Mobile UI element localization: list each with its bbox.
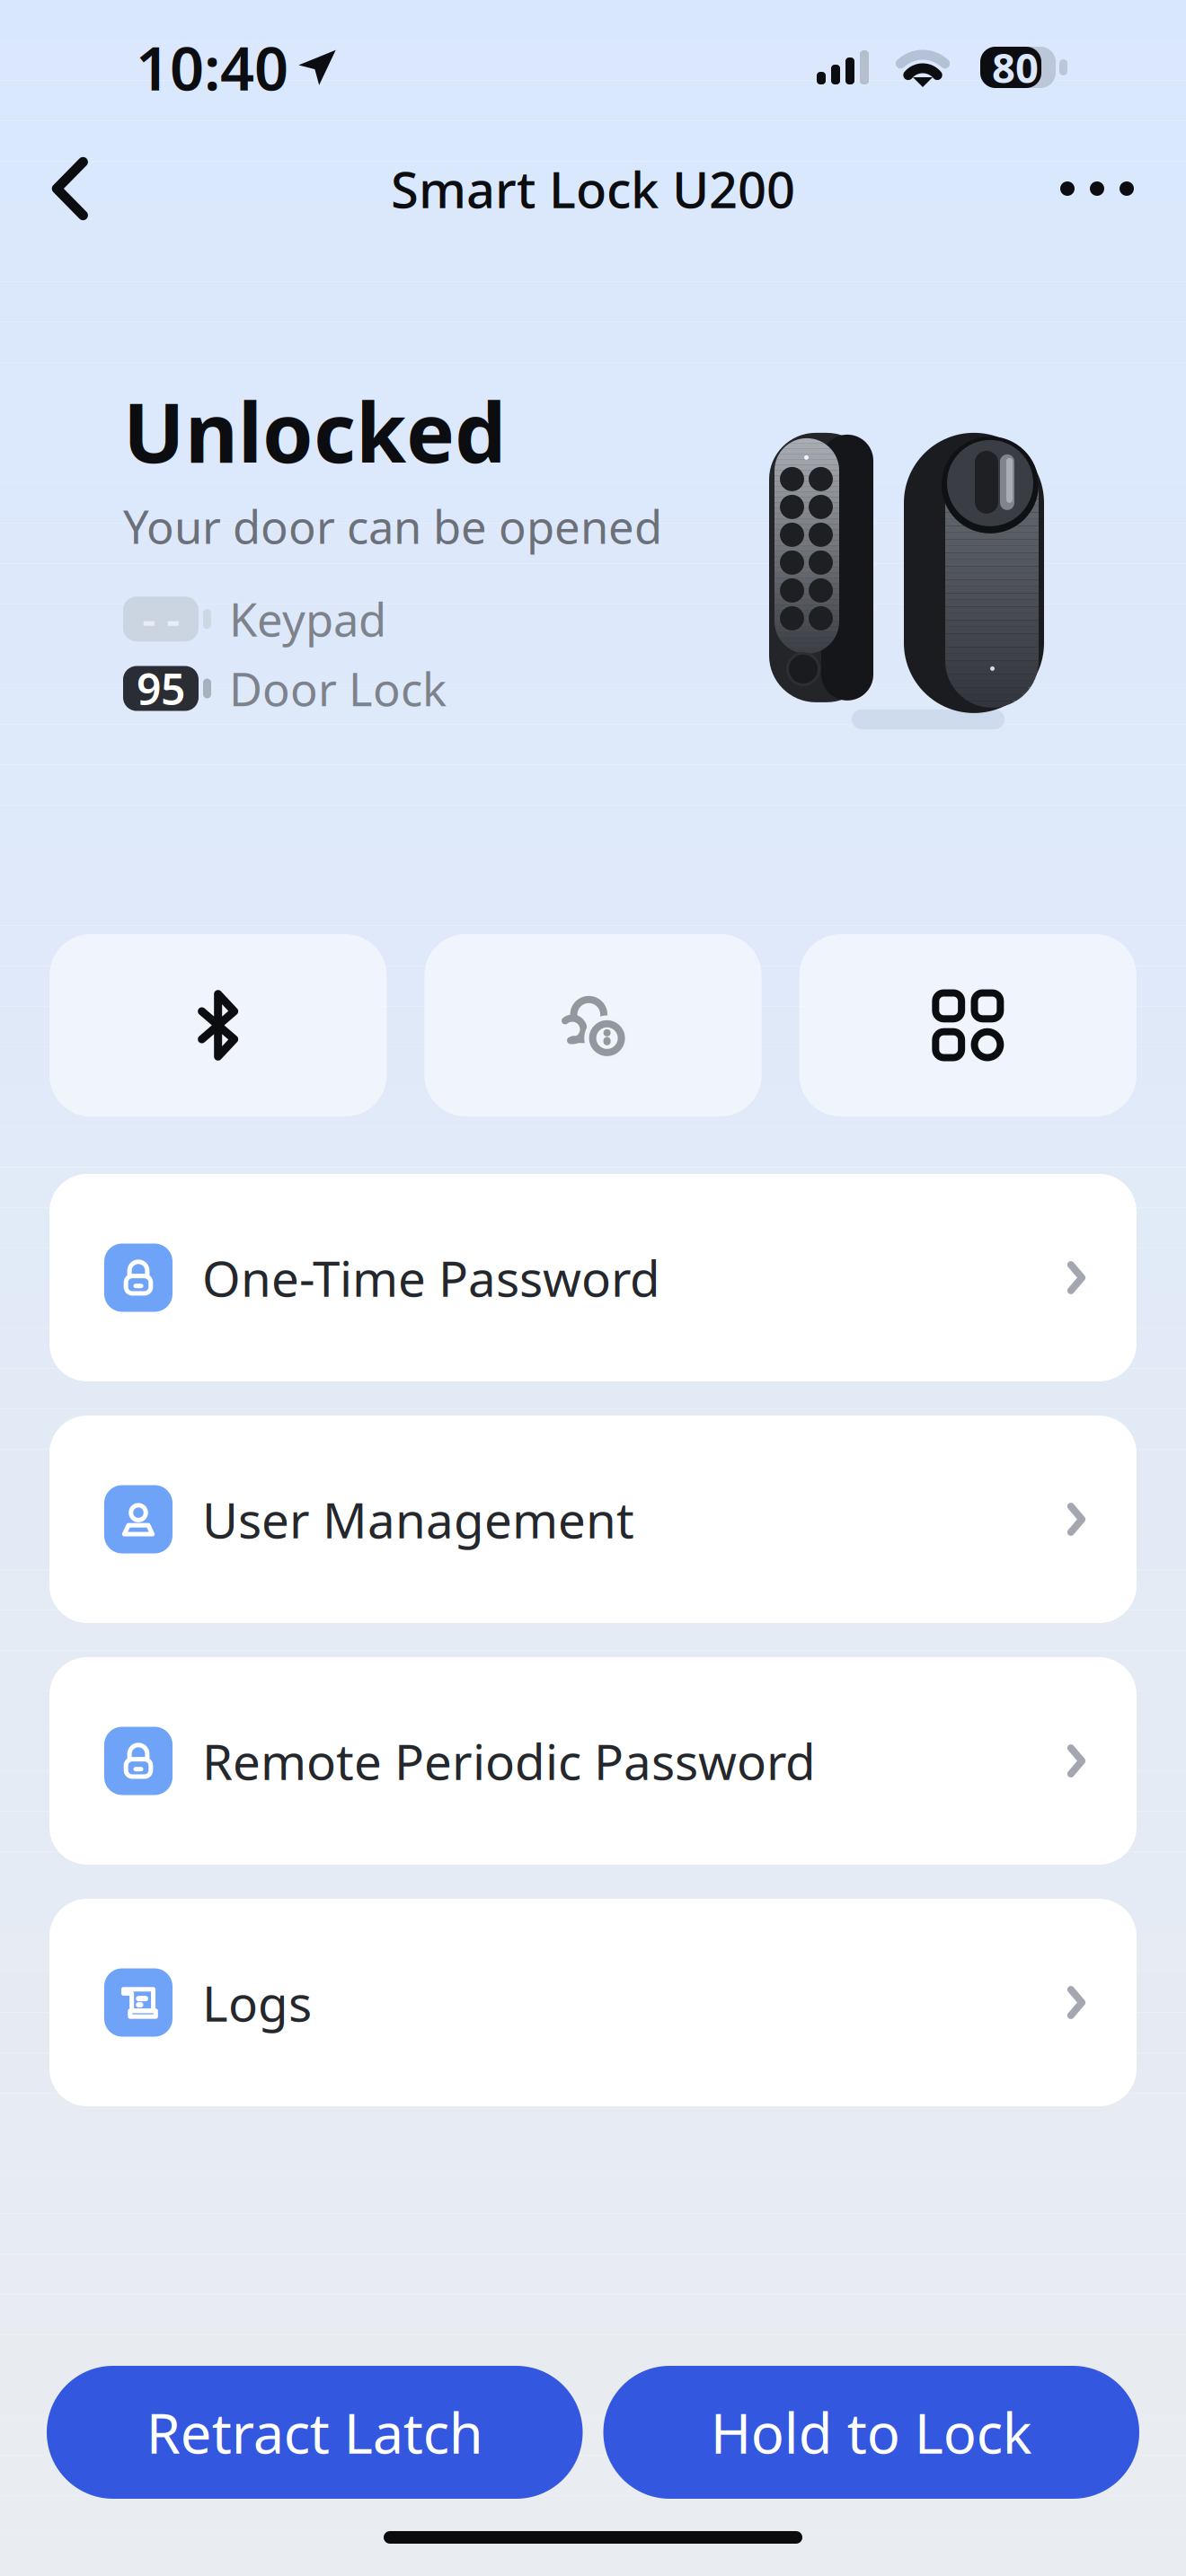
staticText: 95 [137,660,185,717]
button[interactable]: Logs [49,1899,1137,2106]
staticText: - - [142,590,180,648]
staticText: Smart Lock U200 [391,155,795,222]
staticText: Keypad [229,589,386,649]
staticText: Retract Latch [146,2396,483,2469]
button[interactable]: One-Time Password [49,1174,1137,1381]
staticText: Logs [202,1970,312,2035]
button[interactable]: More features [799,934,1137,1116]
staticText: One-Time Password [202,1245,660,1310]
staticText: Unlocked [123,377,506,485]
staticText: User Management [202,1487,634,1552]
button[interactable]: Back [29,136,111,242]
button[interactable]: Remote Periodic Password [49,1657,1137,1865]
staticText: Remote Periodic Password [202,1728,816,1793]
staticText: 10:40 [136,28,288,107]
staticText: 80 [992,40,1039,94]
button[interactable]: Cloud status [424,934,762,1116]
staticText: Your door can be opened [123,496,662,557]
button[interactable]: Bluetooth [49,934,387,1116]
button[interactable]: More options [1037,146,1157,232]
staticText: Hold to Lock [711,2396,1032,2469]
button[interactable]: User Management [49,1416,1137,1623]
button[interactable]: Retract Latch [47,2366,583,2499]
button[interactable]: Hold to Lock [603,2366,1139,2499]
staticText: Door Lock [229,658,447,719]
